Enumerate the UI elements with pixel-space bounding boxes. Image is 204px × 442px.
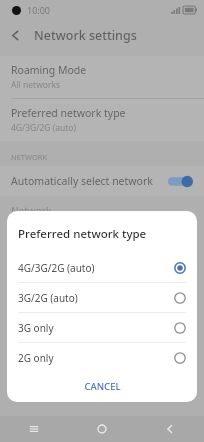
button[interactable]: Automatically select network	[0, 166, 204, 196]
staticText: CANCEL	[84, 380, 121, 393]
staticText: Network settings	[34, 27, 137, 44]
button[interactable]: Roaming Mode	[0, 56, 204, 98]
staticText: Network	[11, 204, 52, 218]
staticText: Preferred network type	[18, 226, 147, 242]
button[interactable]: CANCEL	[7, 372, 197, 400]
staticText: 2G only	[18, 351, 174, 365]
staticText: 3G/2G (auto)	[18, 291, 174, 305]
button[interactable]: 4G/3G/2G (auto)	[7, 253, 197, 282]
staticText: Roaming Mode	[11, 63, 87, 77]
staticText: 10:00	[27, 4, 51, 16]
button[interactable]: 3G/2G (auto)	[7, 283, 197, 312]
staticText: Automatically select network	[11, 174, 168, 188]
button[interactable]: Back	[136, 416, 204, 442]
button[interactable]: 3G only	[7, 313, 197, 342]
button[interactable]: Back	[0, 20, 30, 50]
staticText: 4G/3G/2G (auto)	[11, 122, 77, 134]
staticText: All networks	[11, 79, 61, 91]
button[interactable]: 2G only	[7, 343, 197, 372]
button[interactable]: Preferred network type	[0, 99, 204, 141]
staticText: 4G/3G/2G (auto)	[18, 261, 174, 275]
button[interactable]: Home	[68, 416, 136, 442]
button[interactable]: Recents	[0, 416, 68, 442]
staticText: 3G only	[18, 321, 174, 335]
staticText: NETWORK	[11, 152, 48, 162]
staticText: Preferred network type	[11, 106, 126, 120]
